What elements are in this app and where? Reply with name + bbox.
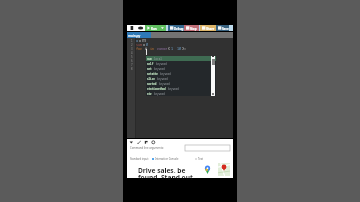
staticText: Drive sales, be xyxy=(138,166,186,173)
button[interactable]: Debug xyxy=(168,25,184,31)
staticText: keyword xyxy=(159,82,170,86)
button[interactable]: Run xyxy=(145,25,166,31)
staticText: Interactive Console xyxy=(155,157,179,161)
staticText: 10 xyxy=(177,46,182,50)
staticText: Share xyxy=(206,27,215,31)
staticText: sum xyxy=(147,57,152,61)
staticText: str xyxy=(147,92,152,96)
button[interactable]: Stop xyxy=(184,25,199,31)
staticText: 1 xyxy=(131,39,133,43)
staticText: 5 xyxy=(131,55,133,59)
button[interactable]: sum xyxy=(146,56,216,61)
button[interactable]: Copy xyxy=(144,140,149,145)
staticText: ): xyxy=(182,46,187,50)
staticText: ( xyxy=(168,46,171,50)
staticText: sorted xyxy=(147,82,157,86)
staticText: Run xyxy=(151,27,157,31)
button[interactable]: Word wrap xyxy=(137,140,142,145)
button[interactable]: Clear xyxy=(129,140,134,145)
staticText: 2 xyxy=(131,43,133,47)
staticText: 7 xyxy=(131,63,133,67)
staticText: keyword xyxy=(154,67,165,71)
button[interactable]: Restart xyxy=(151,140,156,145)
staticText: Stop xyxy=(190,27,197,31)
button[interactable]: str xyxy=(146,91,216,96)
button[interactable]: Share xyxy=(200,25,216,31)
button[interactable]: set xyxy=(146,66,216,71)
staticText: i xyxy=(145,46,150,50)
staticText: 8 xyxy=(131,67,133,71)
staticText: local xyxy=(154,57,162,61)
staticText: Debug xyxy=(174,27,184,31)
staticText: Text xyxy=(198,157,203,161)
staticText: [] xyxy=(142,38,147,42)
staticText: keyword xyxy=(156,62,167,66)
staticText: setattr xyxy=(147,72,158,76)
button[interactable] xyxy=(185,145,230,151)
button[interactable]: Save xyxy=(216,25,229,31)
staticText: slice xyxy=(147,77,155,81)
staticText: keyword xyxy=(157,77,168,81)
staticText: set xyxy=(147,67,152,71)
button[interactable]: File menu xyxy=(127,25,145,31)
staticText: Command line arguments: xyxy=(130,146,164,150)
staticText: keyword xyxy=(160,72,171,76)
button[interactable]: setattr xyxy=(146,71,216,76)
staticText: self xyxy=(147,62,154,66)
staticText: keyword xyxy=(168,87,179,91)
button[interactable]: staticmethod xyxy=(146,86,216,91)
button[interactable]: slice xyxy=(146,76,216,81)
staticText: main.py xyxy=(128,34,141,38)
staticText: 6 xyxy=(131,59,133,63)
button[interactable]: sorted xyxy=(146,81,216,86)
staticText: 3 xyxy=(131,47,133,51)
button[interactable]: Drive sales, be xyxy=(127,164,233,178)
staticText: sum xyxy=(136,42,143,46)
staticText: 4 xyxy=(131,51,133,55)
staticText: Standard input: xyxy=(130,157,149,161)
staticText: range xyxy=(157,46,168,50)
staticText: Save xyxy=(222,27,229,31)
staticText: = xyxy=(139,38,142,42)
button[interactable]: self xyxy=(146,61,216,66)
staticText: staticmethod xyxy=(147,87,166,91)
staticText: for xyxy=(136,46,145,50)
button[interactable]: main.py xyxy=(127,32,151,38)
staticText: in xyxy=(150,46,157,50)
staticText: keyword xyxy=(154,92,165,96)
staticText: found. Stand out xyxy=(138,173,193,180)
staticText: 0 xyxy=(146,42,149,46)
staticText: = xyxy=(143,42,146,46)
staticText: 1 xyxy=(171,46,174,50)
staticText: a xyxy=(136,38,139,42)
